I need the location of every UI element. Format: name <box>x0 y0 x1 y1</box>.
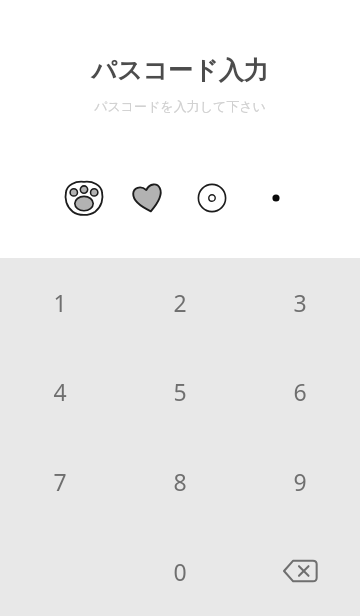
staticText: 7 <box>53 466 67 497</box>
staticText: 9 <box>293 466 307 497</box>
button[interactable]: 5 <box>120 347 240 436</box>
button[interactable]: 6 <box>240 347 360 436</box>
button[interactable]: 0 <box>120 526 240 616</box>
staticText: 1 <box>53 287 67 318</box>
staticText: パスコードを入力して下さい <box>94 98 266 114</box>
button[interactable]: 1 <box>0 258 120 347</box>
button[interactable]: 9 <box>240 436 360 526</box>
button[interactable]: 7 <box>0 436 120 526</box>
staticText: 5 <box>173 376 187 407</box>
button[interactable]: 3 <box>240 258 360 347</box>
staticText: 8 <box>173 466 187 497</box>
staticText: パスコード入力 <box>91 55 269 86</box>
staticText: 3 <box>293 287 307 318</box>
button[interactable]: 2 <box>120 258 240 347</box>
button[interactable]: Delete <box>240 526 360 616</box>
staticText: 2 <box>173 287 187 318</box>
button[interactable]: 4 <box>0 347 120 436</box>
staticText: 4 <box>53 376 67 407</box>
staticText: 6 <box>293 376 307 407</box>
staticText: 0 <box>173 556 187 587</box>
button[interactable]: 8 <box>120 436 240 526</box>
